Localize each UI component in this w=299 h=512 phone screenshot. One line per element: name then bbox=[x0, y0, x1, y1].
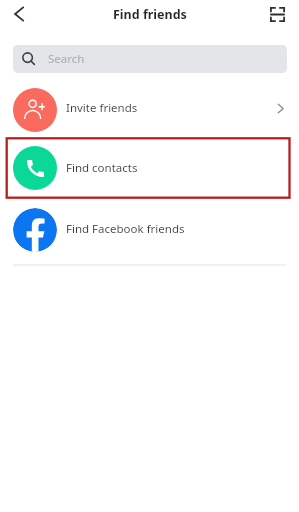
staticText: Invite friends bbox=[66, 100, 138, 116]
button[interactable]: Search bbox=[13, 45, 287, 73]
button[interactable]: Find contacts bbox=[0, 138, 299, 198]
button[interactable]: Scan QR code bbox=[264, 1, 290, 27]
staticText: Search bbox=[48, 51, 85, 67]
button[interactable]: Back bbox=[6, 1, 31, 26]
button[interactable]: Invite friends bbox=[0, 80, 299, 139]
staticText: Find Facebook friends bbox=[66, 221, 185, 237]
staticText: Find contacts bbox=[66, 160, 138, 176]
staticText: Find friends bbox=[113, 6, 187, 23]
button[interactable]: Find Facebook friends bbox=[0, 199, 299, 261]
